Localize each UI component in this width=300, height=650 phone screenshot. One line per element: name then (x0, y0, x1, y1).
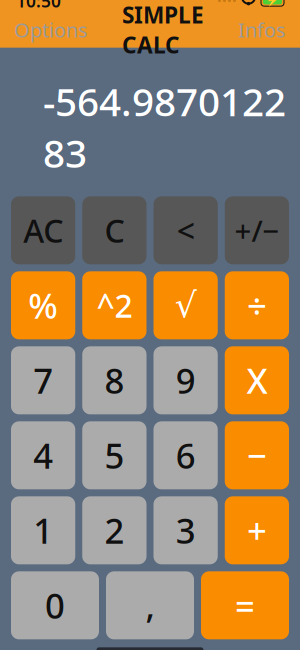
staticText: 9 (176, 357, 196, 403)
staticText: = (235, 582, 255, 628)
button[interactable]: 5 (82, 421, 146, 489)
staticText: + (247, 507, 267, 553)
button[interactable]: 0 (11, 571, 99, 639)
staticText: SIMPLE CALC (122, 0, 204, 60)
button[interactable]: 6 (153, 421, 218, 489)
staticText: 7 (33, 357, 53, 403)
staticText: ÷ (247, 282, 267, 328)
staticText: 4 (33, 432, 53, 478)
button[interactable]: X (225, 346, 289, 414)
staticText: √ (175, 286, 197, 325)
button[interactable]: − (225, 421, 289, 489)
staticText: 10:50 (16, 0, 61, 12)
staticText: Infos (238, 16, 286, 43)
staticText: +/− (234, 211, 279, 250)
button[interactable]: + (225, 496, 289, 564)
button[interactable]: 3 (153, 496, 218, 564)
staticText: 0 (45, 582, 65, 628)
staticText: 1 (33, 507, 53, 553)
staticText: ^2 (96, 284, 132, 327)
staticText: Options (14, 16, 88, 43)
button[interactable]: 9 (153, 346, 218, 414)
staticText: 5 (104, 432, 124, 478)
button[interactable]: 2 (82, 496, 146, 564)
button[interactable]: 7 (11, 346, 75, 414)
button[interactable]: Infos (228, 10, 286, 49)
button[interactable]: 1 (11, 496, 75, 564)
button[interactable]: % (11, 271, 75, 339)
staticText: -564.987012283 (43, 76, 286, 178)
staticText: C (104, 209, 124, 252)
staticText: % (28, 282, 58, 328)
staticText: 2 (104, 507, 124, 553)
staticText: AC (23, 209, 63, 252)
button[interactable]: √ (153, 271, 218, 339)
button[interactable]: = (201, 571, 289, 639)
button[interactable]: Options (14, 10, 98, 49)
button[interactable]: ^2 (82, 271, 146, 339)
staticText: X (246, 357, 267, 403)
button[interactable]: AC (11, 196, 75, 264)
staticText: 8 (104, 357, 124, 403)
button[interactable]: , (106, 571, 194, 639)
button[interactable]: ÷ (225, 271, 289, 339)
staticText: , (145, 582, 154, 628)
staticText: < (177, 209, 195, 252)
button[interactable]: +/− (225, 196, 289, 264)
button[interactable]: 4 (11, 421, 75, 489)
button[interactable]: C (82, 196, 146, 264)
staticText: − (247, 432, 267, 478)
staticText: 3 (176, 507, 196, 553)
staticText: ⚡ (266, 0, 279, 7)
button[interactable]: < (153, 196, 218, 264)
button[interactable]: 8 (82, 346, 146, 414)
staticText: 6 (176, 432, 196, 478)
